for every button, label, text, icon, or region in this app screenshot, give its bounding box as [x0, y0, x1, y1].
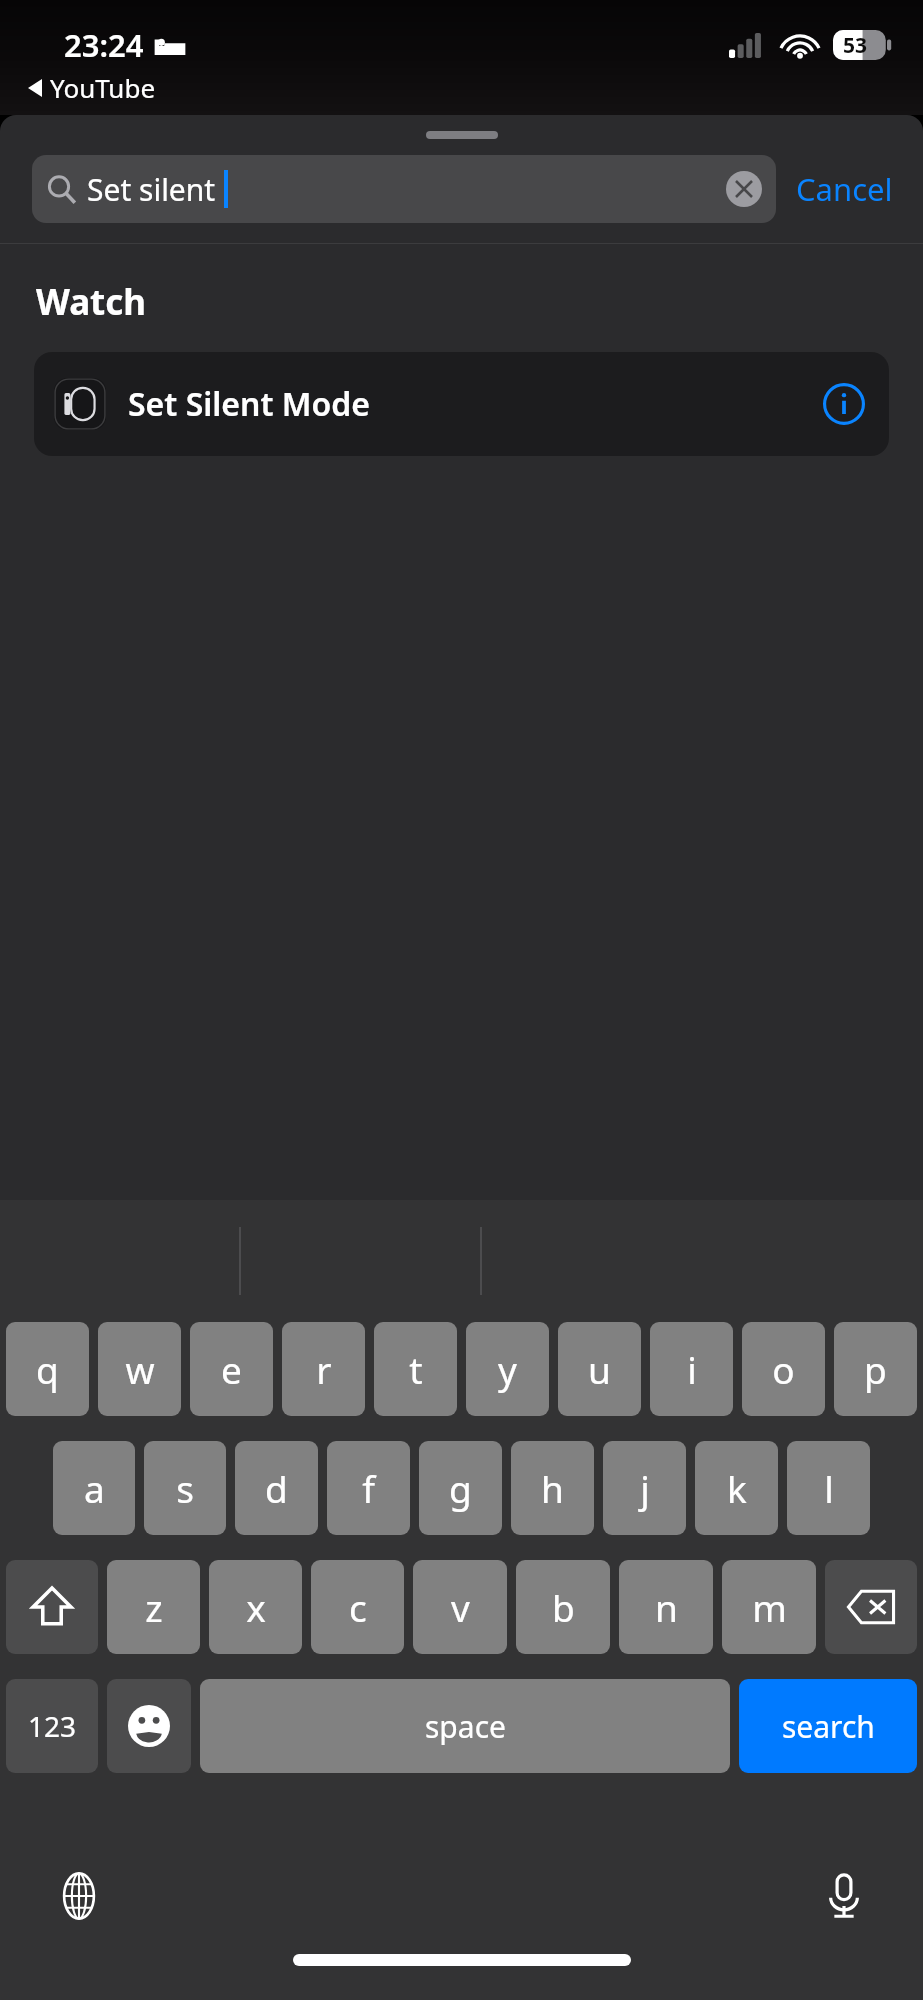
staticText: k — [727, 1463, 747, 1513]
staticText: v — [451, 1582, 470, 1632]
button[interactable]: Set silent — [32, 155, 776, 223]
button[interactable]: search — [739, 1679, 917, 1773]
button[interactable]: v — [413, 1560, 507, 1654]
staticText: t — [409, 1344, 423, 1394]
button[interactable]: w — [98, 1322, 181, 1416]
staticText: d — [265, 1463, 288, 1513]
staticText: x — [246, 1582, 266, 1632]
staticText: o — [772, 1344, 795, 1394]
button[interactable]: x — [209, 1560, 302, 1654]
button[interactable]: q — [6, 1322, 89, 1416]
staticText: f — [362, 1463, 375, 1513]
staticText: n — [655, 1582, 678, 1632]
button[interactable]: 123 — [6, 1679, 98, 1773]
button[interactable]: Change keyboard — [50, 1867, 108, 1925]
button[interactable]: b — [516, 1560, 610, 1654]
button[interactable]: z — [107, 1560, 200, 1654]
staticText: y — [498, 1344, 517, 1394]
staticText: q — [36, 1344, 59, 1394]
button[interactable]: s — [144, 1441, 226, 1535]
button[interactable]: j — [603, 1441, 686, 1535]
button[interactable]: f — [327, 1441, 410, 1535]
button[interactable]: Info — [821, 381, 867, 427]
staticText: Set silent — [87, 169, 216, 210]
staticText: w — [125, 1344, 155, 1394]
button[interactable]: Set Silent Mode — [34, 352, 889, 456]
button[interactable]: r — [282, 1322, 365, 1416]
button[interactable]: Backspace — [825, 1560, 917, 1654]
button[interactable]: d — [235, 1441, 318, 1535]
staticText: 23:24 — [64, 24, 144, 66]
button[interactable]: n — [619, 1560, 713, 1654]
button[interactable]: a — [53, 1441, 135, 1535]
staticText: 123 — [28, 1707, 77, 1745]
staticText: s — [176, 1463, 194, 1513]
staticText: i — [687, 1344, 697, 1394]
staticText: z — [145, 1582, 163, 1632]
button[interactable]: y — [466, 1322, 549, 1416]
button[interactable]: o — [742, 1322, 825, 1416]
staticText: YouTube — [50, 70, 156, 105]
button[interactable]: h — [511, 1441, 594, 1535]
staticText: c — [349, 1582, 367, 1632]
button[interactable]: Shift — [6, 1560, 98, 1654]
button[interactable]: i — [650, 1322, 733, 1416]
staticText: search — [782, 1706, 875, 1747]
staticText: g — [449, 1463, 472, 1513]
button[interactable]: Dictate — [815, 1867, 873, 1925]
button[interactable]: l — [787, 1441, 870, 1535]
button[interactable]: p — [834, 1322, 917, 1416]
button[interactable]: m — [722, 1560, 816, 1654]
staticText: m — [752, 1582, 787, 1632]
button[interactable]: space — [200, 1679, 730, 1773]
button[interactable]: k — [695, 1441, 778, 1535]
button[interactable]: u — [558, 1322, 641, 1416]
button[interactable]: Emoji — [107, 1679, 191, 1773]
staticText: a — [84, 1463, 105, 1513]
button[interactable]: t — [374, 1322, 457, 1416]
staticText: 53 — [843, 31, 868, 60]
staticText: h — [541, 1463, 564, 1513]
staticText: Cancel — [796, 168, 893, 210]
staticText: e — [221, 1344, 242, 1394]
staticText: Set Silent Mode — [128, 382, 371, 426]
staticText: p — [864, 1344, 887, 1394]
staticText: l — [824, 1463, 834, 1513]
staticText: space — [425, 1706, 506, 1747]
button[interactable]: Clear text — [726, 171, 762, 207]
button[interactable]: Back to YouTube — [28, 70, 156, 105]
staticText: Watch — [36, 278, 147, 326]
staticText: u — [588, 1344, 611, 1394]
button[interactable]: Cancel — [792, 160, 897, 218]
button[interactable]: g — [419, 1441, 502, 1535]
button[interactable]: e — [190, 1322, 273, 1416]
staticText: b — [552, 1582, 575, 1632]
button[interactable]: c — [311, 1560, 404, 1654]
staticText: r — [316, 1344, 332, 1394]
staticText: j — [640, 1463, 650, 1513]
